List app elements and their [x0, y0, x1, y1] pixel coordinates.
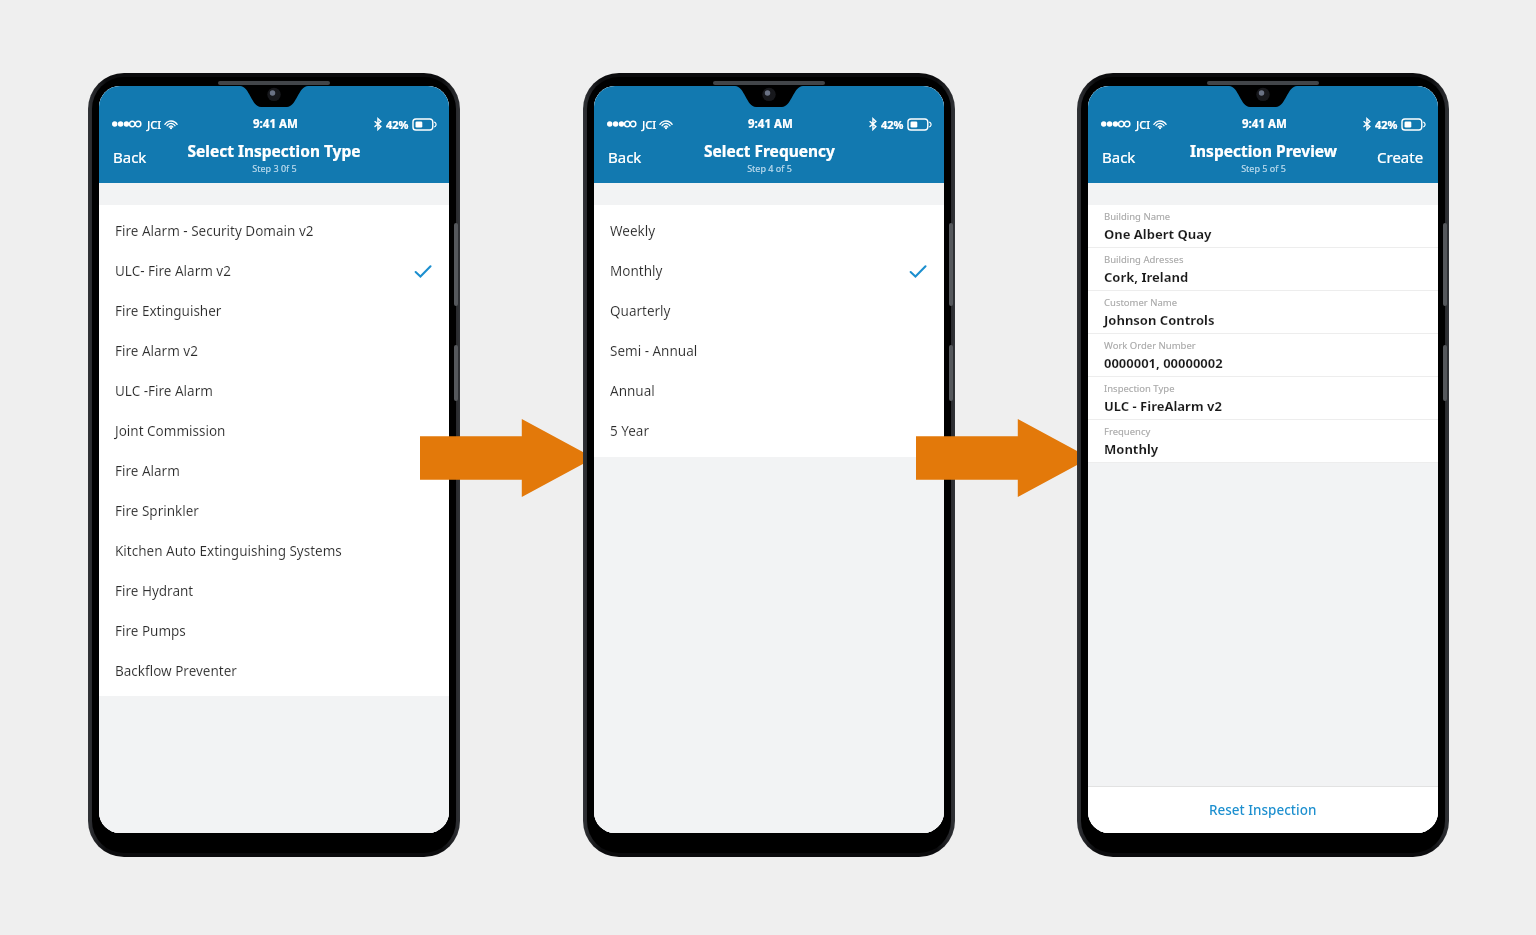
staticText: Annual — [610, 382, 655, 400]
button[interactable]: Work Order Number — [1088, 334, 1438, 376]
staticText: ULC - FireAlarm v2 — [1104, 397, 1222, 415]
button[interactable]: Building Name — [1088, 205, 1438, 247]
other: Battery 42 percent — [908, 119, 931, 130]
button[interactable]: Fire Sprinkler — [99, 491, 449, 531]
other: Bluetooth — [374, 118, 382, 130]
staticText: 42% — [881, 117, 904, 132]
staticText: 42% — [386, 117, 409, 132]
staticText: Frequency — [1104, 425, 1151, 438]
staticText: ULC- Fire Alarm v2 — [115, 262, 231, 280]
staticText: 42% — [1375, 117, 1398, 132]
staticText: Fire Alarm — [115, 462, 180, 480]
staticText: Fire Hydrant — [115, 582, 194, 600]
staticText: Building Name — [1104, 210, 1171, 223]
staticText: Back — [113, 147, 147, 167]
button[interactable]: Create — [1363, 139, 1438, 175]
other: Bluetooth — [1363, 118, 1371, 130]
button[interactable]: Back — [99, 139, 161, 175]
staticText: Fire Sprinkler — [115, 502, 199, 520]
button[interactable]: Fire Alarm v2 — [99, 331, 449, 371]
staticText: Kitchen Auto Extinguishing Systems — [115, 542, 342, 560]
button[interactable]: 5 Year — [594, 411, 944, 451]
button[interactable]: Reset Inspection — [1088, 787, 1438, 833]
button[interactable]: Customer Name — [1088, 291, 1438, 333]
staticText: One Albert Quay — [1104, 225, 1212, 243]
staticText: JCI — [1136, 117, 1151, 132]
button[interactable]: Joint Commission — [99, 411, 449, 451]
button[interactable]: Monthly — [594, 251, 944, 291]
button[interactable]: Kitchen Auto Extinguishing Systems — [99, 531, 449, 571]
button[interactable]: Fire Alarm — [99, 451, 449, 491]
other: Wi-Fi — [660, 119, 672, 129]
staticText: JCI — [642, 117, 657, 132]
button[interactable]: Fire Hydrant — [99, 571, 449, 611]
button[interactable]: ULC- Fire Alarm v2 — [99, 251, 449, 291]
staticText: Fire Alarm - Security Domain v2 — [115, 222, 314, 240]
staticText: Fire Alarm v2 — [115, 342, 198, 360]
staticText: Select Inspection Type — [187, 140, 361, 161]
staticText: Johnson Controls — [1104, 311, 1215, 329]
button[interactable]: Semi - Annual — [594, 331, 944, 371]
button[interactable]: Annual — [594, 371, 944, 411]
staticText: Joint Commission — [115, 422, 226, 440]
staticText: Cork, Ireland — [1104, 268, 1189, 286]
staticText: Inspection Type — [1104, 382, 1175, 395]
other: Signal strength — [112, 120, 143, 128]
other: Signal strength — [1101, 120, 1132, 128]
staticText: 0000001, 00000002 — [1104, 354, 1223, 372]
staticText: Backflow Preventer — [115, 662, 237, 680]
staticText: Create — [1377, 147, 1424, 167]
button[interactable]: Fire Alarm - Security Domain v2 — [99, 211, 449, 251]
button[interactable]: Back — [1088, 139, 1150, 175]
button[interactable]: Weekly — [594, 211, 944, 251]
staticText: Customer Name — [1104, 296, 1178, 309]
staticText: 9:41 AM — [748, 116, 793, 132]
staticText: Step 3 0f 5 — [252, 162, 297, 174]
other: Signal strength — [607, 120, 638, 128]
staticText: Building Adresses — [1104, 253, 1184, 266]
staticText: Back — [608, 147, 642, 167]
staticText: Weekly — [610, 222, 656, 240]
staticText: Semi - Annual — [610, 342, 698, 360]
staticText: Fire Extinguisher — [115, 302, 222, 320]
other: Wi-Fi — [1154, 119, 1166, 129]
staticText: 5 Year — [610, 422, 649, 440]
staticText: Step 5 of 5 — [1241, 162, 1286, 174]
button[interactable]: Back — [594, 139, 656, 175]
button[interactable]: Fire Extinguisher — [99, 291, 449, 331]
staticText: 9:41 AM — [1242, 116, 1287, 132]
staticText: Step 4 of 5 — [747, 162, 792, 174]
staticText: Select Frequency — [704, 140, 835, 161]
staticText: Reset Inspection — [1209, 801, 1317, 819]
staticText: Quarterly — [610, 302, 671, 320]
staticText: Inspection Preview — [1190, 140, 1337, 161]
staticText: Back — [1102, 147, 1136, 167]
other: Battery 42 percent — [1402, 119, 1425, 130]
staticText: ULC -Fire Alarm — [115, 382, 213, 400]
other: Battery 42 percent — [413, 119, 436, 130]
other: Wi-Fi — [165, 119, 177, 129]
button[interactable]: ULC -Fire Alarm — [99, 371, 449, 411]
staticText: JCI — [147, 117, 162, 132]
staticText: Monthly — [1104, 440, 1159, 458]
staticText: Work Order Number — [1104, 339, 1196, 352]
button[interactable]: Frequency — [1088, 420, 1438, 462]
other: Bluetooth — [869, 118, 877, 130]
button[interactable]: Backflow Preventer — [99, 651, 449, 691]
button[interactable]: Inspection Type — [1088, 377, 1438, 419]
button[interactable]: Fire Pumps — [99, 611, 449, 651]
staticText: 9:41 AM — [253, 116, 298, 132]
staticText: Fire Pumps — [115, 622, 186, 640]
button[interactable]: Quarterly — [594, 291, 944, 331]
button[interactable]: Building Adresses — [1088, 248, 1438, 290]
staticText: Monthly — [610, 262, 663, 280]
